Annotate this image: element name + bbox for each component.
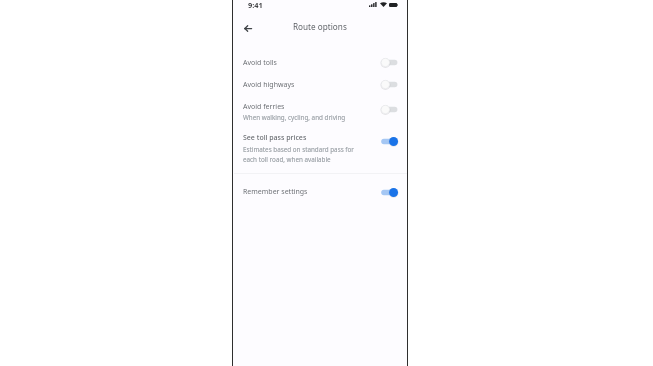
button[interactable]: Remember settings, on — [380, 187, 398, 198]
button[interactable]: Avoid tolls — [233, 51, 406, 73]
button[interactable]: Avoid highways — [233, 73, 406, 95]
staticText: Avoid highways — [243, 80, 295, 90]
button[interactable]: Back — [241, 21, 255, 35]
staticText: When walking, cycling, and driving — [243, 113, 346, 122]
staticText: Estimates based on standard pass for eac… — [243, 145, 354, 164]
staticText: Route options — [293, 21, 347, 32]
staticText: Remember settings — [243, 187, 308, 197]
button[interactable]: Avoid tolls, off — [380, 57, 398, 68]
staticText: 9:41 — [248, 0, 263, 10]
staticText: See toll pass prices — [243, 133, 307, 143]
staticText: Avoid ferries — [243, 102, 285, 112]
button[interactable]: Avoid ferries, off — [380, 104, 398, 115]
other: Cellular signal — [369, 2, 377, 7]
button[interactable]: Avoid highways, off — [380, 79, 398, 90]
button[interactable]: See toll pass prices, on — [380, 136, 398, 147]
button[interactable]: Avoid ferries — [233, 96, 406, 122]
other: Battery — [389, 3, 398, 7]
button[interactable]: See toll pass prices — [233, 127, 406, 167]
other: Wi-Fi — [380, 2, 387, 7]
button[interactable]: Remember settings — [233, 181, 406, 205]
staticText: Avoid tolls — [243, 58, 277, 68]
